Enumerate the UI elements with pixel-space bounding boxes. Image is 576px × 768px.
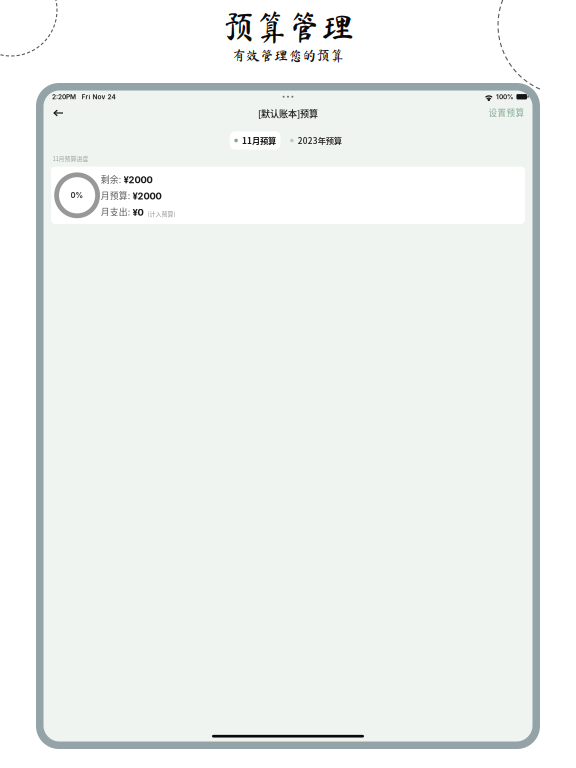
staticText: 11月预算: [242, 134, 276, 146]
staticText: 0%: [71, 191, 84, 200]
staticText: 预算管理: [222, 10, 354, 43]
staticText: ¥2000: [124, 174, 153, 185]
button[interactable]: 2023年预算: [285, 131, 346, 150]
staticText: Fri Nov 24: [82, 93, 116, 101]
staticText: 2:20PM: [52, 93, 76, 101]
button[interactable]: 返回: [48, 106, 68, 122]
staticText: 11月预算进度: [52, 154, 88, 163]
staticText: [默认账本]预算: [258, 107, 318, 120]
staticText: 月预算:: [101, 189, 130, 202]
staticText: 设置预算: [488, 106, 524, 119]
button[interactable]: 设置预算: [485, 104, 527, 124]
staticText: ¥2000: [133, 190, 162, 202]
staticText: 剩余:: [101, 173, 121, 185]
staticText: ¥0: [133, 207, 144, 218]
staticText: (计入预算): [148, 209, 176, 218]
staticText: 有效管理您的预算: [232, 48, 344, 62]
staticText: 2023年预算: [298, 134, 342, 146]
button[interactable]: 11月预算: [230, 131, 280, 150]
staticText: 月支出:: [101, 205, 130, 218]
staticText: 100%: [496, 93, 514, 101]
